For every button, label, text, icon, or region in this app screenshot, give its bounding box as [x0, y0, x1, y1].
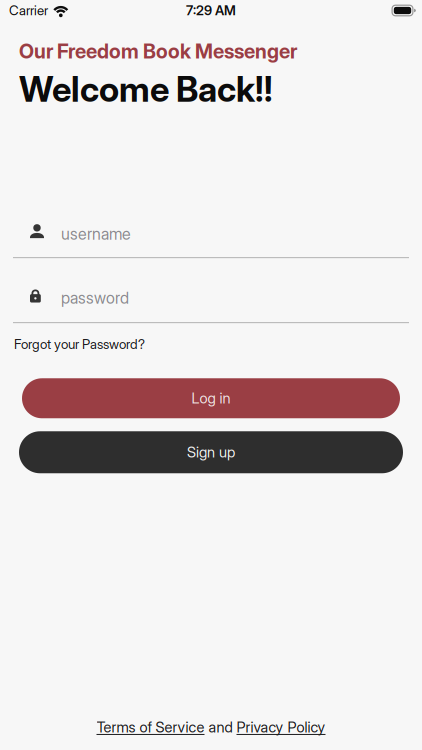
staticText: username [61, 224, 131, 243]
staticText: Sign up [187, 443, 235, 461]
staticText: password [61, 288, 129, 307]
button[interactable]: Terms of Service [96, 718, 204, 736]
staticText: Our Freedom Book Messenger [19, 39, 297, 63]
staticText: 7:29 AM [186, 2, 236, 18]
staticText: Forgot your Password? [14, 336, 145, 352]
staticText: Carrier [9, 2, 48, 18]
button[interactable]: Sign up [19, 431, 403, 473]
button[interactable]: Forgot your Password? [0, 323, 422, 354]
staticText: Welcome Back!! [19, 68, 273, 110]
staticText: Terms of Service [96, 718, 204, 736]
staticText: and [204, 718, 236, 736]
button[interactable]: Privacy Policy [236, 718, 325, 736]
staticText: Privacy Policy [236, 718, 325, 736]
button[interactable]: Log in [22, 378, 400, 418]
staticText: Log in [191, 389, 230, 407]
